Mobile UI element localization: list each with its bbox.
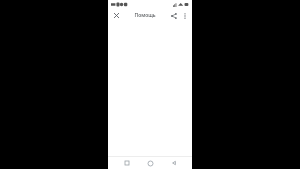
button[interactable]: Back (169, 158, 179, 168)
button[interactable]: Close (111, 10, 122, 21)
staticText: Помощь (134, 12, 156, 19)
button[interactable]: Share (168, 10, 179, 21)
button[interactable]: More options (180, 11, 189, 20)
button[interactable]: Recent apps (122, 158, 132, 168)
button[interactable]: Home (145, 158, 155, 168)
